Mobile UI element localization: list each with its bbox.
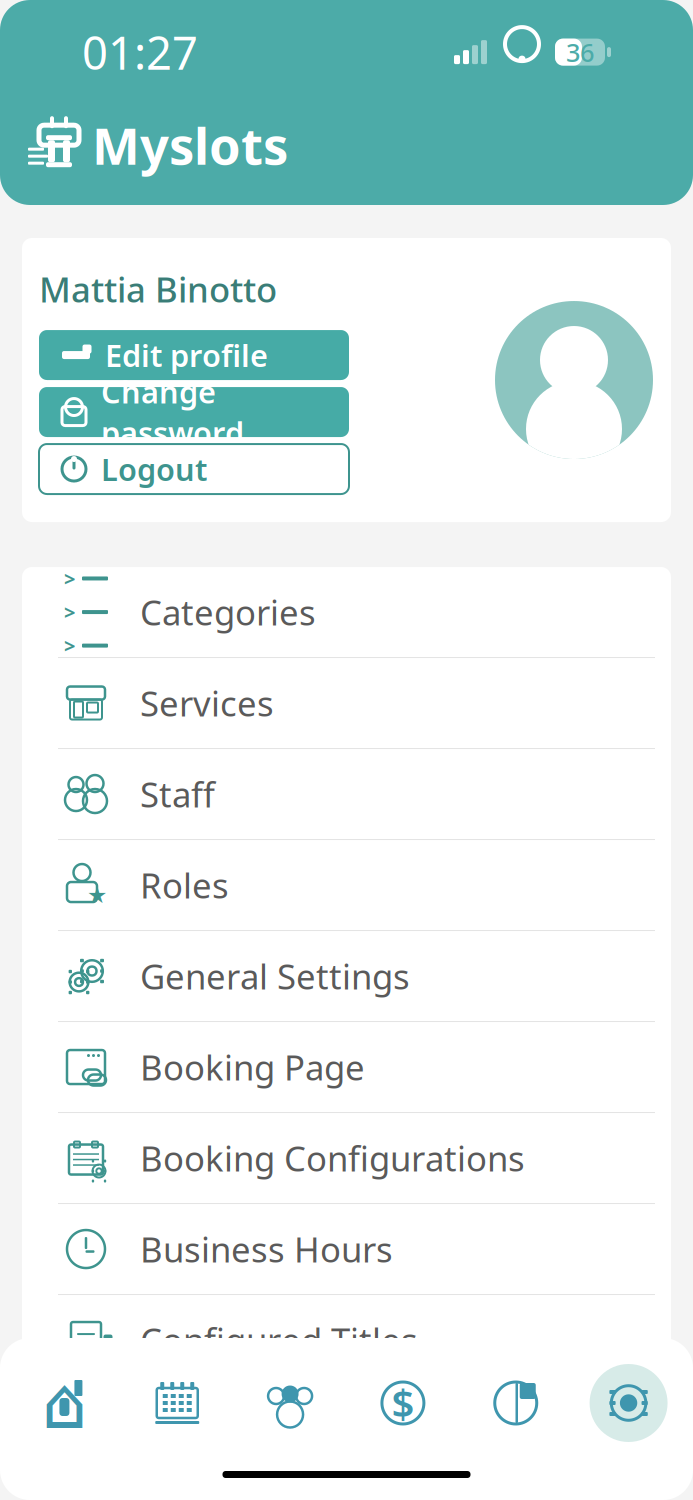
staticText: Myslots [92, 112, 288, 179]
staticText: Logout [101, 449, 207, 489]
button[interactable]: Calendar [121, 1376, 234, 1430]
staticText: > [64, 599, 75, 625]
button[interactable]: Payments [346, 1378, 459, 1428]
staticText: > [64, 632, 75, 659]
button[interactable]: General Settings [22, 931, 671, 1022]
staticText: ⌂ [41, 1362, 87, 1444]
button[interactable]: Customers [234, 1378, 346, 1428]
staticText: 01:27 [82, 22, 198, 82]
staticText: Business Hours [140, 1226, 393, 1272]
staticText: Staff [140, 771, 215, 817]
button[interactable]: Booking Configurations [22, 1113, 671, 1204]
staticText: Configured Titles [140, 1317, 418, 1363]
button[interactable]: Staff [22, 749, 671, 840]
button[interactable]: Reports [459, 1378, 572, 1428]
staticText: Change password [101, 371, 244, 453]
button[interactable]: Home [8, 1378, 121, 1428]
staticText: Booking Page [140, 1044, 365, 1090]
button[interactable]: Business Hours [22, 1204, 671, 1295]
staticText: ★ [87, 882, 107, 908]
staticText: Edit profile [105, 335, 268, 375]
button[interactable]: Edit profile [39, 330, 349, 380]
button[interactable]: > [22, 567, 671, 658]
staticText: 36 [566, 35, 594, 69]
button[interactable]: Booking Page [22, 1022, 671, 1113]
staticText: > [64, 565, 75, 592]
staticText: Booking Configurations [140, 1135, 525, 1181]
button[interactable]: Configured Titles [22, 1295, 671, 1385]
staticText: Mattia Binotto [39, 266, 277, 312]
staticText: Roles [140, 862, 229, 908]
staticText: $ [391, 1376, 414, 1429]
button[interactable]: Services [22, 658, 671, 749]
staticText: Services [140, 680, 274, 726]
staticText: General Settings [140, 953, 410, 999]
button[interactable]: Settings [572, 1364, 685, 1442]
button[interactable]: Logout [39, 444, 349, 494]
button[interactable]: Change password [39, 387, 349, 437]
staticText: Categories [140, 589, 316, 635]
button[interactable]: ★ [22, 840, 671, 931]
